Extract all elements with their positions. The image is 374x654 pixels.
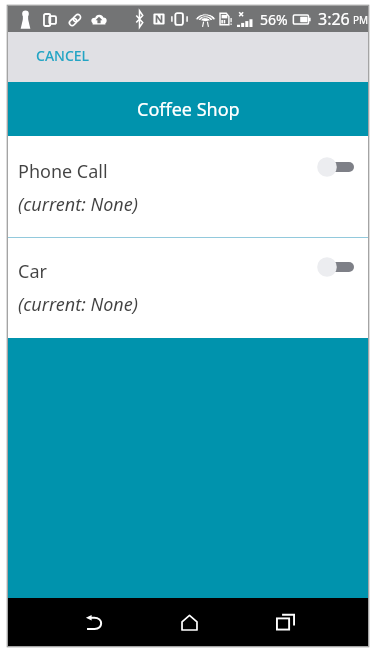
staticText: (current: None) xyxy=(18,292,138,317)
staticText: CANCEL xyxy=(36,46,90,65)
button[interactable]: Toggle xyxy=(314,154,356,180)
staticText: PM xyxy=(353,13,369,27)
button[interactable]: Car xyxy=(8,238,368,338)
button[interactable]: Toggle xyxy=(314,254,356,280)
staticText: Coffee Shop xyxy=(137,97,240,122)
button[interactable]: Home xyxy=(164,598,214,646)
staticText: Car xyxy=(18,259,47,284)
staticText: Phone Call xyxy=(18,159,108,184)
button[interactable]: Back xyxy=(68,598,118,646)
staticText: 56% xyxy=(260,10,288,29)
button[interactable]: CANCEL xyxy=(8,34,110,81)
button[interactable]: Recents xyxy=(260,598,310,646)
staticText: (current: None) xyxy=(18,192,138,217)
button[interactable]: Phone Call xyxy=(8,136,368,237)
staticText: 3:26 xyxy=(318,8,350,30)
